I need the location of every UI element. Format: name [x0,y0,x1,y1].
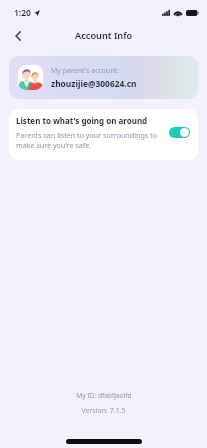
staticText: Parents can listen to your surroundings … [16,130,164,150]
staticText: Account Info [75,29,133,42]
staticText: Listen to what's going on around [16,115,148,126]
button[interactable]: My parent's account: [9,56,198,99]
button[interactable]: Back [5,24,31,48]
staticText: My parent's account: [51,66,120,76]
staticText: zhouzijie@300624.cn [51,78,137,89]
staticText: Version: 7.1.5 [81,406,126,416]
button[interactable]: Toggle listening [169,127,190,138]
staticText: My ID: dfabfjaoifd [76,391,132,400]
button[interactable]: Listen to what's going on around [9,109,198,160]
staticText: 1:20 [14,7,31,19]
